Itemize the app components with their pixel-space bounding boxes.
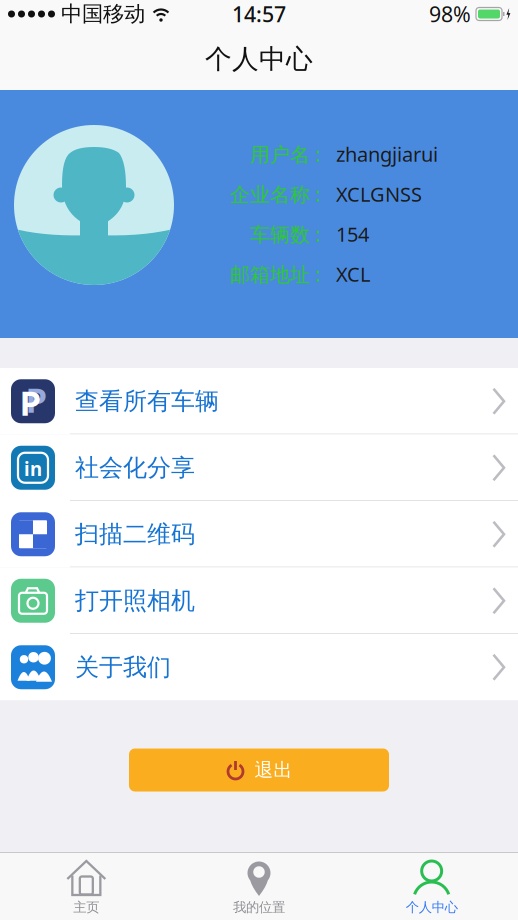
staticText: 退出 [254, 758, 292, 781]
button[interactable]: 扫描二维码 [0, 501, 518, 567]
staticText: 我的位置 [233, 899, 285, 915]
staticText: 主页 [73, 899, 99, 915]
button[interactable]: P [0, 368, 518, 434]
button[interactable]: in [0, 434, 518, 501]
staticText: 邮箱地址 : [230, 261, 320, 287]
staticText: 14:57 [232, 0, 286, 28]
staticText: 154 [336, 221, 369, 247]
staticText: 车辆数 : [250, 221, 320, 247]
staticText: 打开照相机 [75, 586, 195, 615]
staticText: 中国移动 [61, 1, 145, 27]
staticText: P [19, 379, 41, 425]
staticText: in [24, 456, 42, 481]
staticText: 查看所有车辆 [75, 386, 219, 416]
staticText: P [25, 376, 47, 422]
button[interactable]: 打开照相机 [0, 567, 518, 634]
staticText: 个人中心 [406, 899, 458, 915]
staticText: 个人中心 [205, 43, 313, 75]
staticText: 社会化分享 [75, 453, 195, 482]
staticText: 关于我们 [75, 652, 171, 682]
staticText: 用户名 : [250, 141, 320, 167]
staticText: 企业名称 : [230, 181, 320, 207]
staticText: XCL [336, 261, 370, 287]
staticText: 98% [429, 0, 471, 28]
staticText: 扫描二维码 [75, 519, 195, 549]
button[interactable]: 我的位置 [173, 858, 345, 915]
button[interactable]: 退出 [129, 748, 389, 791]
button[interactable]: 关于我们 [0, 634, 518, 700]
button[interactable]: 主页 [0, 858, 173, 915]
staticText: XCLGNSS [336, 181, 422, 207]
staticText: zhangjiarui [336, 141, 438, 167]
button[interactable]: 个人中心 [345, 858, 518, 915]
